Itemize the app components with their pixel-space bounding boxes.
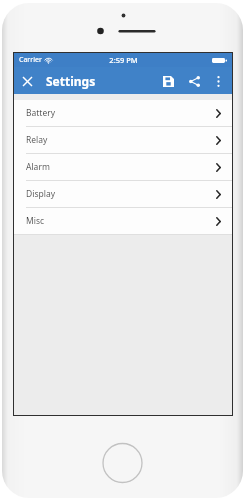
staticText: Alarm (26, 161, 50, 173)
button[interactable]: Battery (14, 100, 232, 126)
button[interactable]: More options (207, 70, 229, 92)
button[interactable]: Misc (14, 208, 232, 234)
button[interactable]: Save (155, 68, 181, 94)
staticText: Settings (46, 73, 96, 89)
button[interactable]: Display (14, 181, 232, 207)
button[interactable]: Relay (14, 127, 232, 153)
staticText: Battery (26, 107, 56, 119)
button[interactable]: Share (181, 68, 207, 94)
staticText: Display (26, 188, 55, 200)
button[interactable]: Alarm (14, 154, 232, 180)
staticText: Misc (26, 215, 45, 227)
staticText: Relay (26, 134, 48, 146)
button[interactable]: Close (14, 68, 40, 94)
staticText: 2:59 PM (109, 55, 138, 65)
staticText: Carrier (19, 55, 42, 65)
